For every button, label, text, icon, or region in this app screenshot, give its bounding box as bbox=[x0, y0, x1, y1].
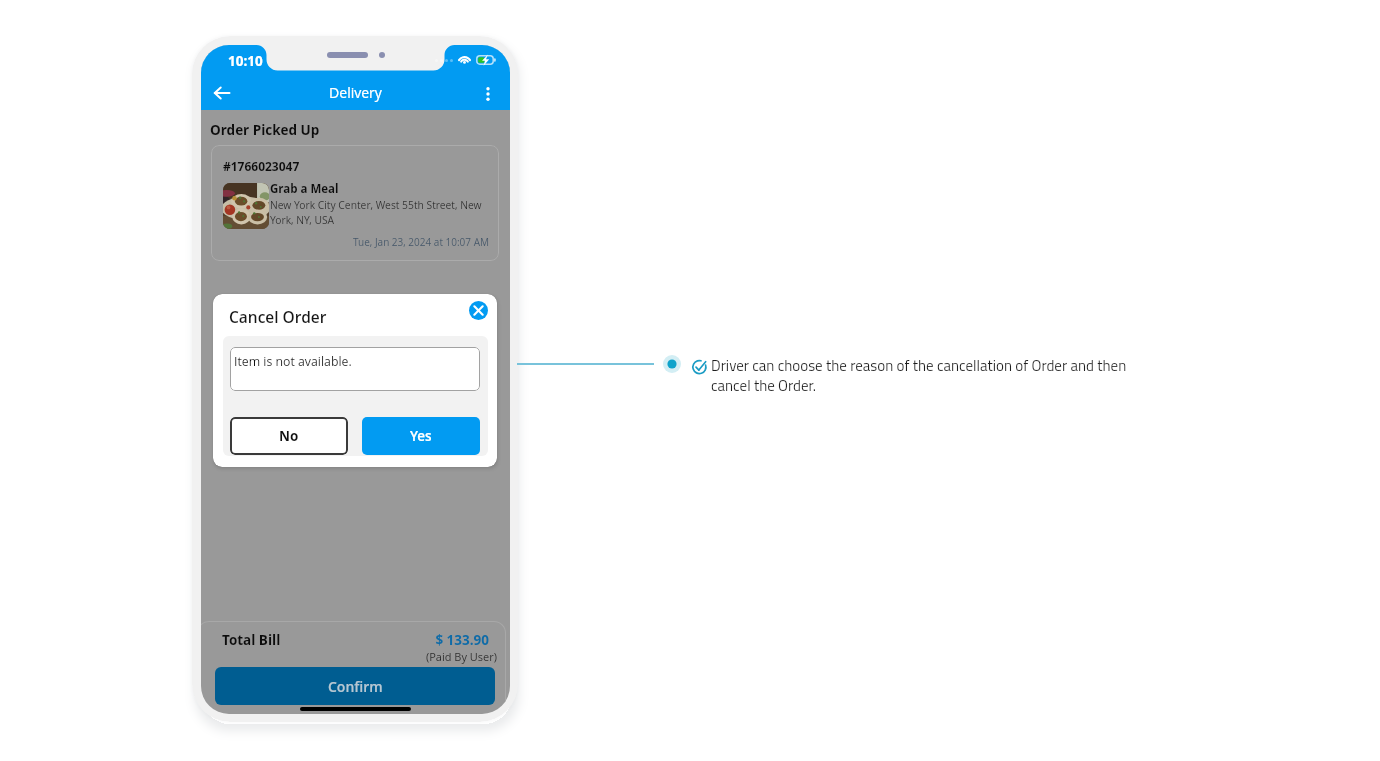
staticText: (Paid By User) bbox=[201, 649, 497, 664]
staticText: Item is not available. bbox=[234, 353, 352, 370]
staticText: Tue, Jan 23, 2024 at 10:07 AM bbox=[211, 235, 489, 249]
staticText: Order Picked Up bbox=[210, 121, 320, 139]
button[interactable]: More options bbox=[468, 74, 508, 114]
staticText: New York City Center, West 55th Street, … bbox=[270, 198, 486, 227]
staticText: Cancel Order bbox=[229, 306, 327, 327]
staticText: 10:10 bbox=[228, 52, 263, 70]
staticText: Confirm bbox=[328, 677, 383, 696]
button[interactable]: Confirm bbox=[215, 667, 495, 705]
button[interactable]: #1766023047 bbox=[211, 145, 499, 261]
staticText: No bbox=[279, 427, 299, 445]
staticText: #1766023047 bbox=[223, 158, 300, 174]
staticText: Total Bill bbox=[222, 631, 281, 649]
staticText: $ 133.90 bbox=[201, 631, 489, 649]
staticText: Driver can choose the reason of the canc… bbox=[711, 354, 1139, 397]
staticText: Grab a Meal bbox=[270, 181, 339, 197]
button[interactable]: Close bbox=[469, 301, 488, 320]
staticText: Yes bbox=[410, 427, 432, 445]
button[interactable]: No bbox=[230, 417, 348, 455]
button[interactable]: Item is not available. bbox=[230, 347, 480, 391]
staticText: Delivery bbox=[201, 83, 510, 102]
button[interactable]: Back bbox=[202, 73, 242, 113]
button[interactable]: Yes bbox=[362, 417, 480, 455]
